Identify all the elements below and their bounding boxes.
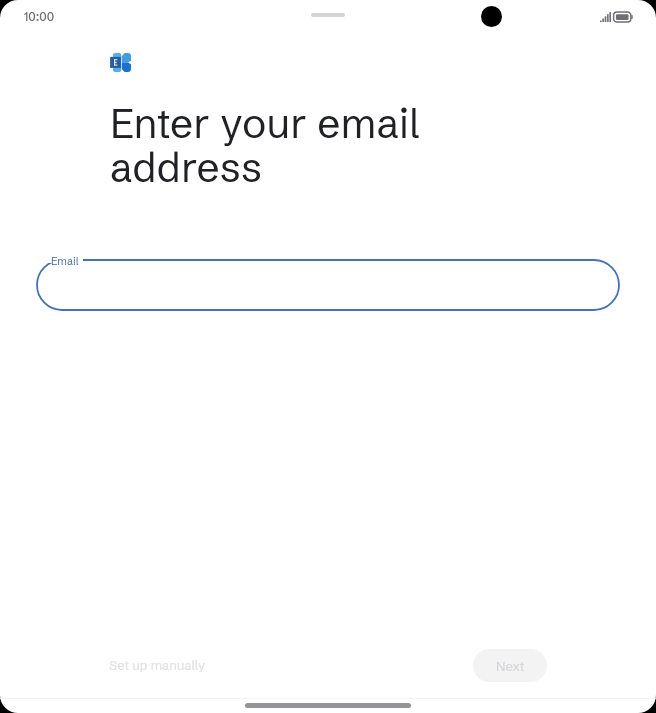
other: Exchange — [110, 53, 131, 72]
staticText: 10:00 — [24, 9, 55, 24]
staticText: Enter your email address — [110, 98, 420, 192]
button[interactable]: Set up manually — [95, 649, 220, 681]
staticText: Set up manually — [109, 657, 206, 673]
staticText: Next — [496, 658, 525, 674]
button[interactable]: Email address input field — [36, 259, 620, 311]
staticText: Email — [51, 254, 79, 268]
button[interactable]: Next — [473, 649, 547, 682]
